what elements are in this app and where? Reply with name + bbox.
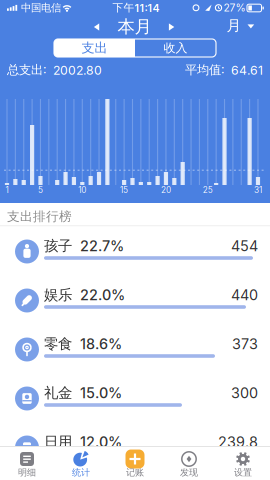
staticText: 27%	[223, 1, 245, 14]
staticText: 本月	[117, 16, 151, 38]
staticText: 平均值: 64.61	[185, 62, 263, 78]
staticText: 发现	[180, 467, 198, 478]
staticText: 454	[231, 237, 258, 255]
button[interactable]: 支出	[54, 39, 135, 57]
staticText: 22.7%	[72, 237, 124, 255]
staticText: 礼金	[44, 384, 72, 402]
staticText: 25	[203, 185, 213, 195]
staticText: 支出排行榜	[7, 208, 72, 224]
button[interactable]: 收入	[135, 39, 216, 57]
staticText: 373	[232, 335, 258, 353]
staticText: 15	[120, 185, 128, 195]
staticText: 日用	[44, 433, 72, 451]
button[interactable]: 记账	[108, 446, 162, 480]
staticText: 300	[231, 384, 258, 402]
button[interactable]: 统计	[54, 446, 108, 480]
staticText: 1	[5, 185, 8, 195]
staticText: 支出	[81, 40, 107, 56]
staticText: 记账	[126, 467, 144, 478]
staticText: 月	[226, 16, 241, 35]
staticText: 12.0%	[72, 433, 122, 451]
staticText: 239.8	[218, 433, 258, 451]
staticText: 娱乐	[44, 286, 72, 304]
button[interactable]: 设置	[216, 446, 270, 480]
staticText: 总支出: 2002.80	[7, 62, 102, 78]
button[interactable]: 日用	[0, 423, 270, 472]
button[interactable]: 孩子	[0, 227, 270, 276]
staticText: 中国电信	[21, 1, 61, 14]
staticText: 440	[231, 286, 258, 304]
staticText: 18.6%	[72, 335, 122, 353]
staticText: 下午11:14	[112, 1, 159, 14]
staticText: 20	[161, 185, 171, 195]
staticText: 10	[78, 185, 86, 195]
button[interactable]: 礼金	[0, 374, 270, 423]
staticText: 设置	[234, 467, 252, 478]
staticText: 零食	[44, 335, 72, 353]
staticText: 统计	[72, 467, 90, 478]
button[interactable]: 选择周期	[225, 12, 257, 40]
button[interactable]: 发现	[162, 446, 216, 480]
staticText: 31	[254, 185, 262, 195]
staticText: 孩子	[44, 237, 72, 255]
button[interactable]: 明细	[0, 446, 54, 480]
staticText: 收入	[163, 41, 187, 55]
button[interactable]: 娱乐	[0, 276, 270, 325]
staticText: 明细	[18, 467, 36, 478]
staticText: 15.0%	[72, 384, 122, 402]
staticText: 22.0%	[72, 286, 125, 304]
button[interactable]: 零食	[0, 325, 270, 374]
button[interactable]: 上一月	[89, 20, 104, 34]
button[interactable]: 下一月	[164, 20, 179, 34]
staticText: 5	[38, 185, 43, 195]
